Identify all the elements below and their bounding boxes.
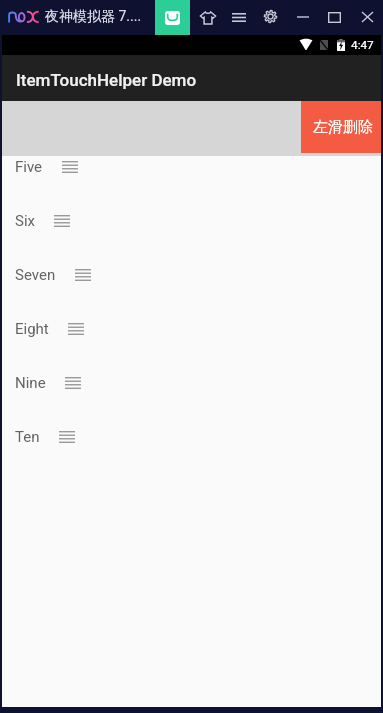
button[interactable]: Ten	[2, 426, 381, 480]
staticText: Six	[15, 212, 35, 230]
button[interactable]: 左滑删除	[301, 101, 381, 153]
button[interactable]: Close	[355, 5, 379, 29]
staticText: 4:47	[351, 38, 374, 52]
staticText: 夜神模拟器 7....	[45, 8, 142, 26]
button[interactable]: Six	[2, 210, 381, 264]
staticText: Ten	[15, 428, 40, 446]
button[interactable]: Nine	[2, 372, 381, 426]
staticText: ItemTouchHelper Demo	[16, 70, 197, 90]
button[interactable]: Themes	[195, 5, 220, 30]
button[interactable]: Minimize	[291, 5, 315, 29]
staticText: Seven	[15, 266, 56, 284]
button[interactable]: Settings	[258, 4, 283, 29]
button[interactable]: Seven	[2, 264, 381, 318]
staticText: Nine	[15, 374, 46, 392]
button[interactable]: Maximize	[322, 5, 346, 29]
button[interactable]: App store	[155, 0, 190, 35]
button[interactable]: Five	[2, 156, 381, 210]
button[interactable]: Eight	[2, 318, 381, 372]
staticText: Five	[15, 158, 43, 176]
button[interactable]: Menu	[227, 5, 251, 29]
staticText: Eight	[15, 320, 49, 338]
staticText: 左滑删除	[313, 118, 373, 137]
